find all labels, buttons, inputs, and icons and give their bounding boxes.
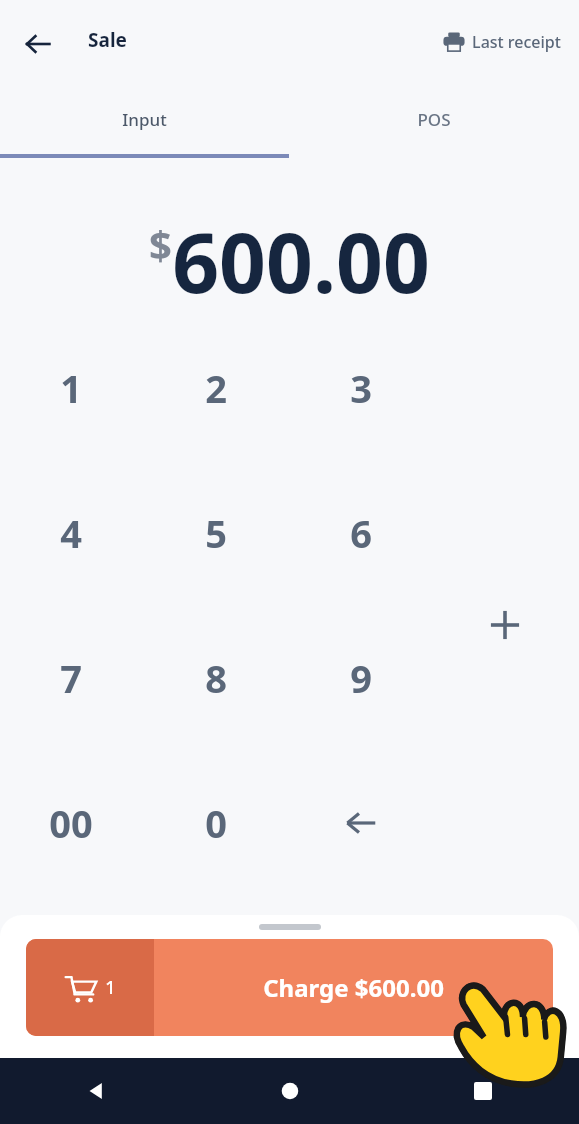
button[interactable]: Back xyxy=(16,22,60,66)
button[interactable]: Add xyxy=(457,589,553,661)
staticText: 5 xyxy=(205,507,227,559)
staticText: 9 xyxy=(350,652,372,704)
staticText: 4 xyxy=(60,507,82,559)
button[interactable]: 4 xyxy=(23,497,119,569)
staticText: 600.00 xyxy=(172,205,430,317)
button[interactable]: 7 xyxy=(23,642,119,714)
staticText: 1 xyxy=(105,975,116,1000)
button[interactable]: Home xyxy=(193,1058,386,1124)
button[interactable]: Back xyxy=(0,1058,193,1124)
staticText: 00 xyxy=(49,797,93,849)
button[interactable]: POS xyxy=(289,86,579,158)
button[interactable]: 9 xyxy=(313,642,409,714)
staticText: 6 xyxy=(350,507,372,559)
button[interactable]: 1 xyxy=(26,939,553,1036)
staticText: 3 xyxy=(350,362,372,414)
staticText: 8 xyxy=(205,652,227,704)
staticText: Last receipt xyxy=(472,31,561,53)
button[interactable]: 00 xyxy=(23,787,119,859)
button[interactable]: 2 xyxy=(168,352,264,424)
staticText: 2 xyxy=(205,362,227,414)
button[interactable]: 1 xyxy=(23,352,119,424)
button[interactable]: Last receipt xyxy=(438,24,565,60)
staticText: Charge $600.00 xyxy=(263,971,444,1004)
staticText: Sale xyxy=(88,27,127,53)
button[interactable]: Input xyxy=(0,86,289,158)
staticText: Input xyxy=(122,108,167,131)
button[interactable]: 6 xyxy=(313,497,409,569)
button[interactable]: 5 xyxy=(168,497,264,569)
button[interactable]: 8 xyxy=(168,642,264,714)
button[interactable]: 0 xyxy=(168,787,264,859)
staticText: 1 xyxy=(60,362,82,414)
button[interactable]: Backspace xyxy=(313,787,409,859)
button[interactable]: 3 xyxy=(313,352,409,424)
staticText: POS xyxy=(417,108,451,131)
staticText: 0 xyxy=(205,797,227,849)
staticText: 7 xyxy=(60,652,82,704)
button[interactable]: Recent apps xyxy=(386,1058,579,1124)
staticText: $ xyxy=(149,217,172,271)
